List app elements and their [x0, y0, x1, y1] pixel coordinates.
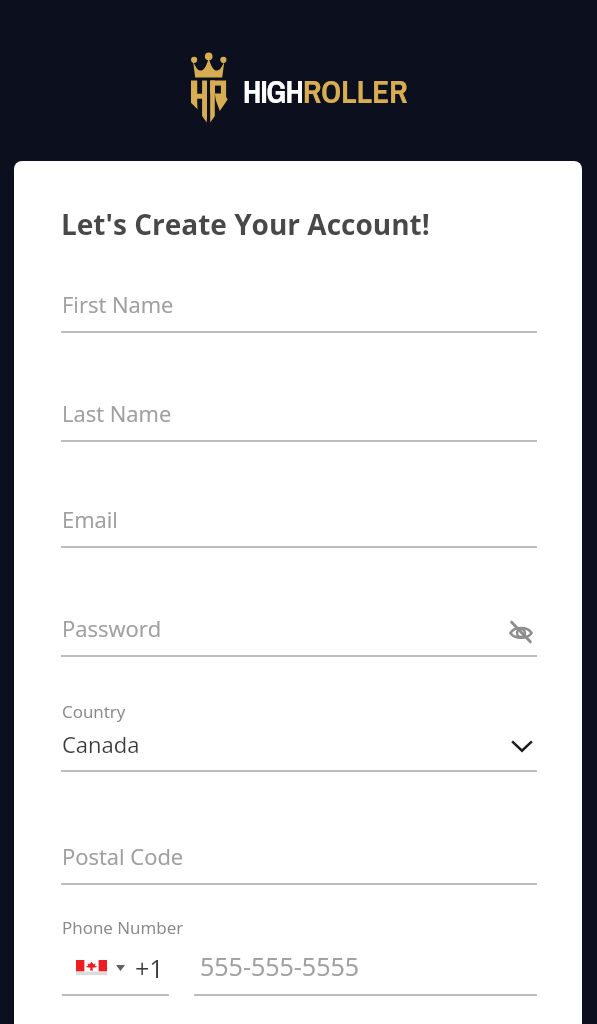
staticText: Last Name — [62, 398, 172, 428]
button[interactable]: Last Name — [61, 392, 537, 442]
staticText: +1 — [135, 951, 164, 985]
button[interactable]: Country — [61, 700, 537, 772]
staticText: Phone Number — [62, 916, 184, 939]
staticText: Password — [62, 613, 162, 643]
staticText: 555-555-5555 — [200, 949, 360, 983]
staticText: Postal Code — [62, 841, 184, 871]
staticText: Let's Create Your Account! — [61, 205, 430, 243]
button[interactable]: Show password — [501, 612, 541, 652]
button[interactable]: First Name — [61, 283, 537, 333]
staticText: First Name — [62, 289, 174, 319]
staticText: Country — [62, 700, 126, 723]
button[interactable]: Email — [61, 498, 537, 548]
button[interactable]: Select country — [504, 727, 540, 763]
other: HighRoller — [186, 50, 411, 126]
staticText: Canada — [62, 729, 140, 759]
staticText: ROLLER — [303, 71, 408, 113]
staticText: Email — [62, 504, 118, 534]
button[interactable]: Select country code — [76, 949, 188, 987]
button[interactable]: Postal Code — [61, 835, 537, 885]
staticText: HIGH — [243, 71, 303, 113]
button[interactable]: Password — [61, 607, 537, 657]
